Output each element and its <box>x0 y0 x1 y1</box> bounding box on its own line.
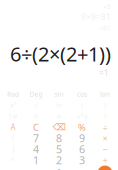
button[interactable]: × <box>93 133 116 144</box>
staticText: 7 <box>33 131 39 145</box>
button[interactable]: 4 <box>24 144 47 155</box>
button[interactable]: 8 <box>47 133 70 144</box>
button[interactable]: C <box>24 122 47 133</box>
button[interactable]: % <box>70 122 93 133</box>
staticText: 0 <box>56 166 62 170</box>
staticText: 4 <box>33 142 39 156</box>
staticText: 2 <box>56 153 62 167</box>
staticText: 8 <box>56 131 62 145</box>
button[interactable]: tan <box>93 89 116 100</box>
staticText: × <box>102 132 107 144</box>
button[interactable]: − <box>93 144 116 155</box>
staticText: ! <box>104 112 106 120</box>
button[interactable]: 2 <box>47 155 70 166</box>
button[interactable]: cos <box>70 89 93 100</box>
staticText: A <box>10 122 15 132</box>
button[interactable]: Deg <box>24 89 47 100</box>
staticText: tan <box>100 90 110 98</box>
staticText: 9×9=81 <box>81 12 111 22</box>
button[interactable]: + <box>93 155 116 166</box>
staticText: √ <box>34 101 38 109</box>
button[interactable]: ÷ <box>93 122 116 133</box>
staticText: − <box>102 143 107 155</box>
button[interactable]: 7 <box>24 133 47 144</box>
button[interactable]: 6 <box>70 144 93 155</box>
button[interactable]: Equals <box>93 166 116 170</box>
button[interactable]: A <box>1 122 24 133</box>
staticText: Rad <box>7 90 19 98</box>
staticText: x² <box>10 101 16 109</box>
staticText: cos <box>77 90 87 98</box>
button[interactable]: sin <box>47 89 70 100</box>
staticText: 6 <box>79 142 85 156</box>
staticText: =1 <box>99 68 109 78</box>
staticText: 6÷(2×(2+1)) <box>10 40 111 67</box>
button[interactable]: 3 <box>70 155 93 166</box>
staticText: + <box>102 154 107 166</box>
staticText: sin <box>54 90 63 98</box>
button[interactable]: Rad <box>1 89 24 100</box>
staticText: C <box>33 121 39 133</box>
staticText: 1/x <box>8 112 18 120</box>
staticText: =81 <box>99 23 111 32</box>
staticText: = <box>102 166 108 170</box>
button[interactable]: ⌫ <box>47 122 70 133</box>
staticText: 3 <box>79 153 85 167</box>
staticText: ⌫ <box>52 122 65 132</box>
staticText: ) <box>12 144 14 154</box>
staticText: % <box>78 121 86 133</box>
staticText: e <box>57 112 61 120</box>
staticText: 1 <box>33 153 39 167</box>
staticText: ( <box>81 101 83 109</box>
staticText: Deg <box>29 90 42 98</box>
staticText: 9 <box>79 131 85 145</box>
staticText: x^y <box>76 112 87 120</box>
button[interactable]: 9 <box>70 133 93 144</box>
staticText: ÷ <box>102 121 107 133</box>
staticText: ( <box>12 133 14 143</box>
staticText: ) <box>104 101 106 109</box>
button[interactable]: 0 <box>47 168 70 170</box>
staticText: π <box>34 112 38 120</box>
staticText: 5 <box>56 142 62 156</box>
staticText: =9 <box>103 2 111 11</box>
button[interactable]: 1 <box>24 155 47 166</box>
button[interactable]: 5 <box>47 144 70 155</box>
staticText: ln <box>56 101 62 109</box>
